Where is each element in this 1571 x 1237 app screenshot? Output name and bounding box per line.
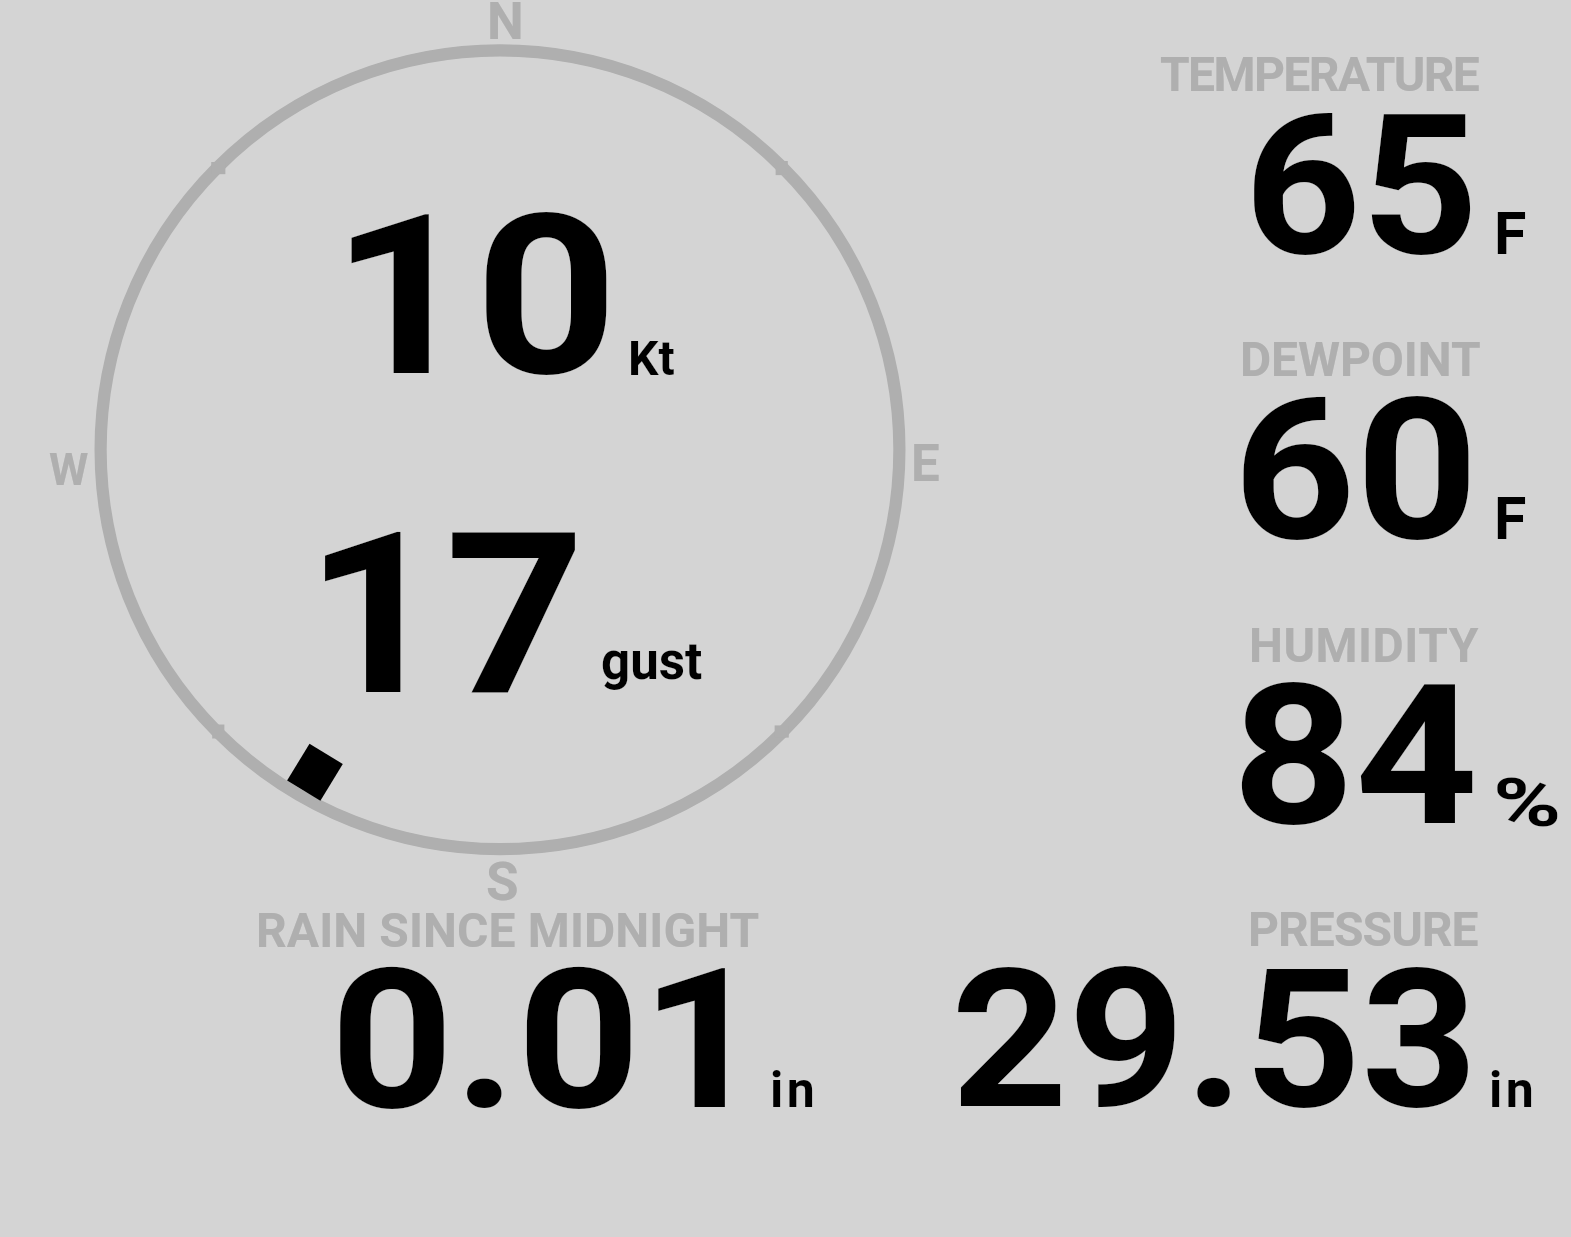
staticText: 17 [305,484,586,747]
staticText: TEMPERATURE [1160,46,1479,102]
staticText: in [770,1061,819,1120]
staticText: 10 [331,167,618,427]
staticText: F [1494,484,1527,553]
staticText: W [49,443,89,496]
staticText: S [486,851,519,913]
staticText: HUMIDITY [1249,617,1479,673]
button[interactable]: Humidity 84 percent [1000,600,1571,875]
staticText: Kt [628,330,675,386]
button[interactable]: Temperature 65 degrees Fahrenheit [1000,40,1571,310]
staticText: 65 [1244,72,1479,301]
button[interactable]: Wind 10 knots gusting 17, direction sout… [60,10,950,900]
staticText: 60 [1233,355,1479,586]
staticText: N [487,0,524,52]
staticText: 0.01 [330,926,765,1155]
button[interactable]: Dewpoint 60 degrees Fahrenheit [1000,320,1571,595]
staticText: E [911,434,940,494]
staticText: PRESSURE [1248,901,1478,957]
staticText: % [1493,765,1562,842]
staticText: 29.53 [951,927,1479,1153]
staticText: DEWPOINT [1240,331,1481,387]
staticText: 84 [1232,642,1478,871]
staticText: RAIN SINCE MIDNIGHT [256,902,760,958]
staticText: in [1489,1061,1538,1120]
button[interactable]: Pressure 29.53 inches [900,895,1571,1125]
button[interactable]: Rain since midnight 0.01 inches [200,895,840,1125]
staticText: F [1494,199,1527,268]
staticText: gust [601,632,703,692]
